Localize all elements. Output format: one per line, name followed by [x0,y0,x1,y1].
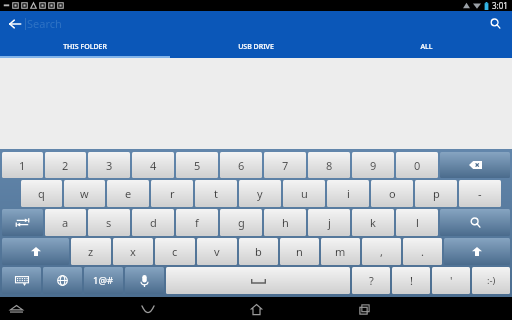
button[interactable]: m [321,238,360,265]
button[interactable]: w [64,180,105,207]
staticText: c [172,244,178,259]
staticText: v [214,244,220,259]
staticText: z [88,244,94,259]
staticText: 1@# [93,274,114,287]
staticText: x [130,244,136,259]
button[interactable]: Search [484,12,507,35]
button[interactable]: mic [125,267,164,294]
staticText: 3 [106,158,113,173]
button[interactable]: h [264,209,306,236]
button[interactable]: 4 [132,152,174,178]
button[interactable]: 3 [88,152,130,178]
staticText: n [296,244,303,259]
staticText: u [301,186,308,201]
button[interactable]: c [155,238,195,265]
button[interactable]: . [403,238,442,265]
button[interactable]: 8 [308,152,350,178]
staticText: e [125,186,132,201]
staticText: i [347,186,350,201]
button[interactable]: n [280,238,319,265]
staticText: w [80,186,89,201]
staticText: 6 [238,158,245,173]
button[interactable]: ? [352,267,390,294]
button[interactable]: y [239,180,281,207]
button[interactable]: f [176,209,218,236]
staticText: a [62,215,69,230]
staticText: :-) [487,274,496,287]
button[interactable]: a [45,209,86,236]
button[interactable]: 1@# [84,267,123,294]
button[interactable]: x [113,238,153,265]
button[interactable]: ime [2,267,41,294]
button[interactable]: o [371,180,413,207]
button[interactable]: ALL [341,36,512,58]
button[interactable]: u [283,180,325,207]
button[interactable]: Hide keyboard [7,299,26,318]
button[interactable]: shift [444,238,510,265]
button[interactable]: Back [3,12,26,35]
staticText: 1 [19,158,26,173]
button[interactable]: 9 [352,152,394,178]
button[interactable]: tab [2,209,43,236]
button[interactable]: 2 [45,152,86,178]
staticText: 8 [326,158,333,173]
staticText: s [106,215,112,230]
button[interactable]: d [132,209,174,236]
staticText: m [335,244,346,259]
staticText: ? [369,273,374,288]
button[interactable]: shift [2,238,69,265]
button[interactable]: v [197,238,237,265]
staticText: j [328,215,331,230]
button[interactable]: b [239,238,278,265]
staticText: USB DRIVE [238,42,274,52]
button[interactable]: 1 [2,152,43,178]
button[interactable]: USB DRIVE [170,36,341,58]
button[interactable]: 0 [396,152,438,178]
staticText: - [478,186,482,201]
button[interactable]: 6 [220,152,262,178]
staticText: l [416,215,419,230]
staticText: t [214,186,218,201]
button[interactable]: Recents [354,299,374,319]
staticText: ' [450,273,453,288]
staticText: 3:01 [492,0,508,11]
staticText: 2 [62,158,69,173]
button[interactable]: q [21,180,62,207]
button[interactable]: k [352,209,394,236]
staticText: 7 [282,158,289,173]
button[interactable]: :-) [472,267,510,294]
button[interactable]: globe [43,267,82,294]
button[interactable]: ! [392,267,430,294]
button[interactable]: s [88,209,130,236]
staticText: p [433,186,440,201]
button[interactable]: g [220,209,262,236]
button[interactable]: - [459,180,501,207]
button[interactable]: i [327,180,369,207]
staticText: d [150,215,157,230]
staticText: g [238,215,245,230]
staticText: b [255,244,262,259]
staticText: o [389,186,396,201]
button[interactable]: j [308,209,350,236]
button[interactable]: 7 [264,152,306,178]
button[interactable]: r [151,180,193,207]
button[interactable]: z [71,238,111,265]
button[interactable]: l [396,209,438,236]
button[interactable]: t [195,180,237,207]
button[interactable]: Back [138,299,158,319]
button[interactable]: Home [246,299,266,319]
staticText: y [257,186,263,201]
staticText: 9 [370,158,377,173]
button[interactable]: THIS FOLDER [0,36,170,58]
button[interactable]: enter [440,209,510,236]
button[interactable]: 5 [176,152,218,178]
staticText: h [282,215,289,230]
button[interactable]: space [166,267,350,294]
button[interactable]: , [362,238,401,265]
button[interactable]: backspace [440,152,510,178]
button[interactable]: ' [432,267,470,294]
button[interactable]: p [415,180,457,207]
staticText: THIS FOLDER [63,42,107,52]
button[interactable]: e [107,180,149,207]
staticText: ! [410,273,413,288]
